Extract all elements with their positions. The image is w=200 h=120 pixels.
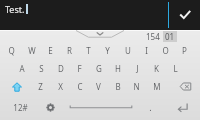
staticText: B: [115, 81, 121, 92]
staticText: K: [154, 63, 159, 74]
staticText: T: [86, 45, 91, 56]
button[interactable]: 154: [146, 31, 174, 42]
staticText: A: [19, 63, 25, 74]
button[interactable]: Hide keyboard: [76, 30, 124, 39]
button[interactable]: I: [137, 42, 156, 59]
button[interactable]: Z: [31, 78, 50, 95]
button[interactable]: P: [175, 42, 194, 59]
button[interactable]: K: [147, 60, 166, 77]
button[interactable]: Send: [169, 0, 200, 30]
button[interactable]: Y: [98, 42, 117, 59]
staticText: G: [96, 63, 102, 74]
button[interactable]: C: [70, 78, 89, 95]
button[interactable]: T: [79, 42, 98, 59]
staticText: Test.: [5, 3, 25, 15]
button[interactable]: G: [89, 60, 108, 77]
staticText: V: [96, 81, 101, 92]
button[interactable]: N: [127, 78, 146, 95]
button[interactable]: Shift: [4, 78, 30, 95]
staticText: U: [125, 45, 131, 56]
staticText: N: [133, 81, 140, 92]
staticText: C: [77, 81, 83, 92]
button[interactable]: Space: [66, 98, 136, 116]
staticText: 154: [146, 31, 160, 42]
button[interactable]: J: [128, 60, 147, 77]
staticText: X: [58, 81, 63, 92]
staticText: M: [153, 81, 161, 92]
staticText: O: [162, 45, 169, 56]
button[interactable]: R: [60, 42, 79, 59]
staticText: R: [67, 45, 72, 56]
button[interactable]: .: [138, 98, 162, 116]
staticText: L: [173, 63, 178, 74]
button[interactable]: Q: [2, 42, 21, 59]
button[interactable]: W: [22, 42, 41, 59]
button[interactable]: E: [41, 42, 60, 59]
button[interactable]: B: [108, 78, 127, 95]
staticText: 12#: [13, 102, 28, 113]
button[interactable]: 12#: [4, 98, 36, 116]
button[interactable]: D: [51, 60, 70, 77]
button[interactable]: Test.: [5, 3, 27, 15]
staticText: 01: [165, 31, 175, 42]
button[interactable]: Settings: [36, 98, 64, 116]
staticText: .: [149, 101, 152, 113]
button[interactable]: U: [118, 42, 137, 59]
staticText: W: [28, 45, 36, 56]
staticText: Y: [105, 45, 110, 56]
staticText: S: [39, 63, 44, 74]
button[interactable]: F: [70, 60, 89, 77]
button[interactable]: Backspace: [172, 78, 198, 95]
button[interactable]: V: [89, 78, 108, 95]
staticText: Z: [38, 81, 43, 92]
button[interactable]: S: [32, 60, 51, 77]
button[interactable]: X: [51, 78, 70, 95]
staticText: H: [115, 63, 121, 74]
button[interactable]: L: [166, 60, 185, 77]
staticText: I: [145, 45, 148, 56]
button[interactable]: O: [156, 42, 175, 59]
staticText: D: [58, 63, 64, 74]
staticText: Q: [8, 45, 15, 56]
button[interactable]: Enter: [168, 98, 196, 116]
staticText: F: [77, 63, 82, 74]
staticText: P: [182, 45, 187, 56]
staticText: J: [136, 63, 139, 74]
button[interactable]: M: [147, 78, 166, 95]
button[interactable]: H: [108, 60, 127, 77]
button[interactable]: A: [12, 60, 31, 77]
staticText: E: [48, 45, 53, 56]
